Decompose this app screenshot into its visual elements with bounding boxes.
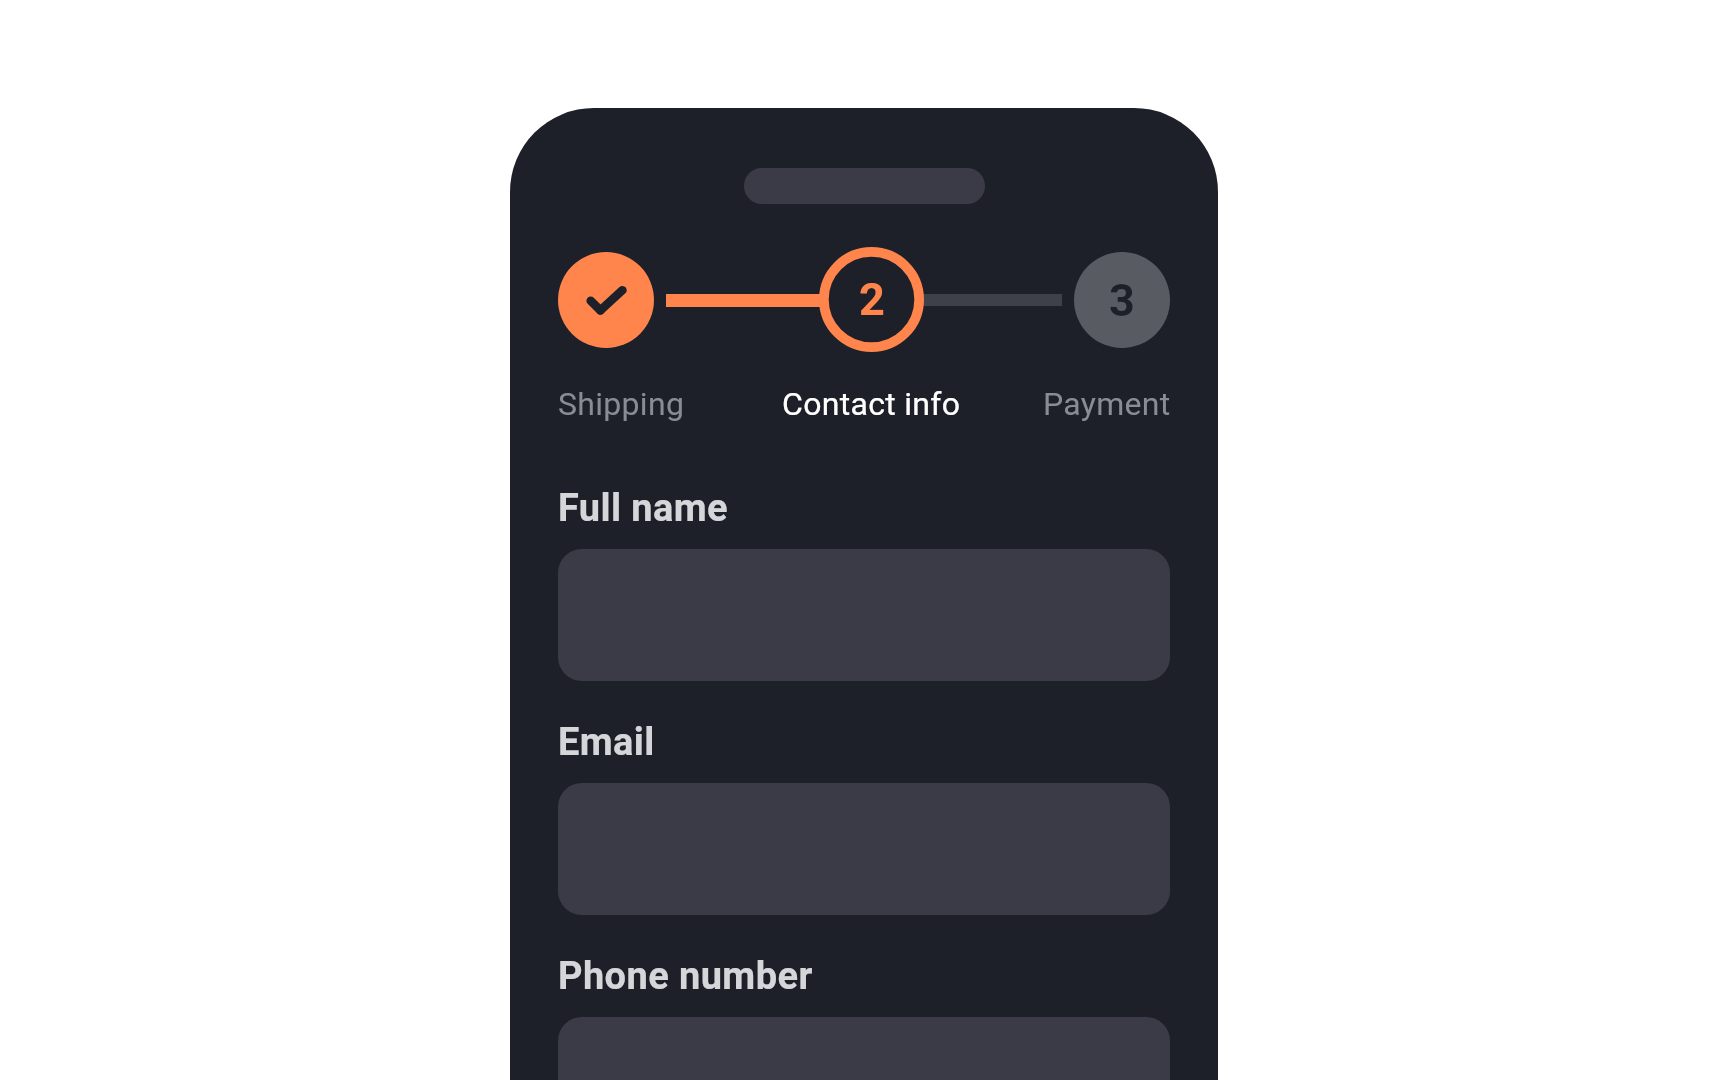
- staticText: Full name: [558, 486, 729, 531]
- button[interactable]: Payment, upcoming step: [1074, 252, 1170, 348]
- staticText: 3: [1109, 274, 1135, 327]
- button[interactable]: Contact info: [782, 385, 961, 423]
- button[interactable]: Shipping, completed: [558, 252, 654, 348]
- button[interactable]: Shipping: [558, 385, 685, 423]
- staticText: Email: [558, 720, 655, 765]
- button[interactable]: Payment: [1043, 385, 1171, 423]
- staticText: Phone number: [558, 954, 813, 999]
- button[interactable]: Contact info, current step: [819, 247, 924, 352]
- staticText: 2: [859, 273, 885, 326]
